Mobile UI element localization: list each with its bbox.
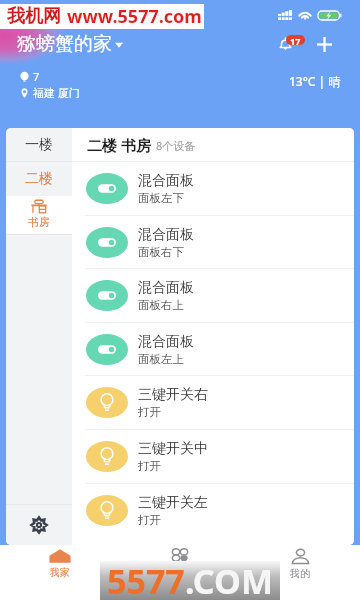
button[interactable]: 混合面板 — [72, 323, 354, 376]
staticText: 三键开关中 — [138, 440, 208, 458]
button[interactable]: 三键开关中 — [72, 430, 354, 483]
staticText: 打开 — [138, 405, 161, 419]
staticText: 8个设备 — [156, 138, 196, 153]
staticText: 混合面板 — [138, 226, 194, 244]
button[interactable]: Notifications — [272, 31, 308, 57]
button[interactable]: 混合面板 — [72, 162, 354, 215]
staticText: 混合面板 — [138, 172, 194, 190]
button[interactable]: 二楼 — [6, 162, 72, 196]
button[interactable]: 我的 — [240, 545, 360, 600]
staticText: 混合面板 — [138, 279, 194, 297]
staticText: 二楼 书房 — [87, 135, 151, 155]
button[interactable]: Add device — [312, 32, 336, 56]
staticText: 打开 — [138, 459, 161, 473]
staticText: 面板左下 — [138, 191, 184, 205]
button[interactable]: 我家 — [0, 545, 120, 600]
staticText: 一楼 — [25, 136, 53, 154]
staticText: 三键开关左 — [138, 494, 208, 512]
staticText: 混合面板 — [138, 333, 194, 351]
staticText: www.5577.com — [67, 4, 202, 29]
staticText: 我家 — [50, 566, 70, 579]
staticText: 三键开关右 — [138, 386, 208, 404]
staticText: 二楼 — [25, 170, 53, 188]
button[interactable]: 猕螃蟹的家 — [17, 32, 123, 56]
button[interactable]: 混合面板 — [72, 269, 354, 322]
staticText: 面板左上 — [138, 352, 184, 366]
button[interactable]: 一楼 — [6, 128, 72, 161]
staticText: .COM — [185, 558, 273, 597]
button[interactable]: Scenes — [120, 545, 240, 600]
staticText: 我机网 — [7, 5, 61, 28]
staticText: 17 — [290, 35, 301, 45]
staticText: 猕螃蟹的家 — [17, 32, 112, 56]
staticText: 面板右下 — [138, 245, 184, 259]
staticText: 我的 — [290, 567, 310, 580]
button[interactable]: Settings — [6, 505, 72, 545]
staticText: 7 — [33, 69, 40, 84]
staticText: 福建 厦门 — [33, 85, 80, 100]
button[interactable]: 三键开关左 — [72, 484, 354, 537]
staticText: 打开 — [138, 513, 161, 527]
staticText: 面板右上 — [138, 298, 184, 312]
staticText: 5577 — [107, 558, 185, 597]
staticText: 13°C | 晴 — [289, 73, 341, 89]
staticText: 书房 — [28, 215, 50, 229]
button[interactable]: 书房 — [6, 196, 72, 234]
button[interactable]: 混合面板 — [72, 216, 354, 269]
button[interactable]: 三键开关右 — [72, 376, 354, 429]
